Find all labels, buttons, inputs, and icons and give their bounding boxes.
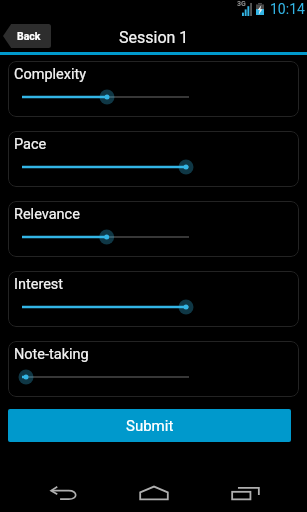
staticText: Back	[17, 30, 41, 42]
staticText: Complexity	[14, 66, 87, 83]
button[interactable]: Complexity	[8, 61, 299, 117]
staticText: Note-taking	[14, 346, 89, 363]
button[interactable]: Back	[36, 475, 92, 511]
button[interactable]: Pace	[8, 131, 299, 187]
staticText: Interest	[14, 276, 64, 293]
staticText: Session 1	[119, 28, 189, 47]
staticText: 3G	[237, 0, 246, 8]
button[interactable]: Submit	[8, 409, 291, 442]
button[interactable]: Home	[126, 475, 182, 511]
staticText: Relevance	[14, 206, 80, 223]
button[interactable]: Recent apps	[217, 475, 273, 511]
button[interactable]: Interest	[8, 271, 299, 327]
staticText: Submit	[126, 417, 174, 435]
button[interactable]: Relevance	[8, 201, 299, 257]
button[interactable]: Note-taking	[8, 341, 299, 397]
staticText: 10:14	[270, 1, 305, 17]
button[interactable]: Back	[3, 24, 51, 48]
staticText: Pace	[14, 136, 47, 153]
